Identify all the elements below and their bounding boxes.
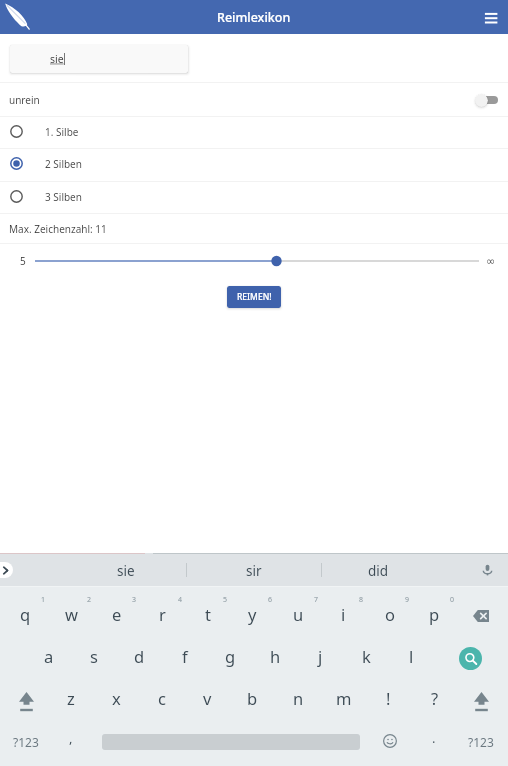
staticText: 5: [223, 595, 228, 605]
button[interactable]: z: [48, 678, 93, 718]
button[interactable]: 1. Silbe: [0, 117, 508, 149]
staticText: s: [90, 645, 98, 667]
button[interactable]: g: [208, 636, 253, 676]
button[interactable]: f: [162, 636, 207, 676]
staticText: Reimlexikon: [217, 9, 291, 26]
staticText: l: [409, 645, 414, 667]
staticText: sie: [117, 562, 135, 580]
staticText: ∞: [486, 255, 496, 268]
button[interactable]: Menu: [482, 7, 502, 27]
button[interactable]: d: [117, 636, 162, 676]
button[interactable]: h: [253, 636, 298, 676]
staticText: g: [225, 645, 236, 667]
button[interactable]: k: [344, 636, 389, 676]
button[interactable]: 7: [276, 596, 321, 636]
staticText: e: [112, 603, 122, 625]
button[interactable]: Shift: [4, 682, 49, 722]
button[interactable]: 4: [140, 596, 185, 636]
staticText: p: [429, 603, 440, 625]
button[interactable]: App logo: [2, 1, 34, 33]
button[interactable]: ?123: [456, 724, 506, 760]
staticText: ?123: [13, 734, 39, 750]
staticText: 2 Silben: [45, 157, 82, 171]
button[interactable]: 0: [412, 596, 457, 636]
staticText: h: [270, 645, 281, 667]
button[interactable]: ?123: [1, 724, 51, 760]
staticText: 2: [87, 595, 92, 605]
button[interactable]: sir: [225, 556, 283, 586]
button[interactable]: 1: [3, 596, 48, 636]
staticText: b: [247, 687, 258, 709]
staticText: 4: [178, 595, 183, 605]
staticText: !: [386, 687, 391, 709]
button[interactable]: m: [321, 678, 366, 718]
staticText: REIMEN!: [237, 291, 272, 303]
staticText: i: [341, 603, 346, 625]
staticText: did: [368, 562, 389, 580]
staticText: o: [385, 603, 395, 625]
staticText: m: [336, 687, 352, 709]
button[interactable]: Backspace: [459, 596, 503, 636]
button[interactable]: 8: [321, 596, 366, 636]
button[interactable]: REIMEN!: [227, 286, 281, 308]
button[interactable]: Shift: [459, 682, 504, 722]
button[interactable]: !: [366, 678, 411, 718]
button[interactable]: a: [26, 636, 71, 676]
staticText: ,: [69, 729, 73, 747]
button[interactable]: s: [71, 636, 116, 676]
staticText: ?123: [468, 734, 494, 750]
button[interactable]: sie: [10, 45, 188, 73]
button[interactable]: x: [94, 678, 139, 718]
button[interactable]: [0, 245, 508, 277]
button[interactable]: ,: [51, 720, 91, 756]
staticText: r: [159, 603, 166, 625]
button[interactable]: 2: [49, 596, 94, 636]
button[interactable]: n: [276, 678, 321, 718]
button[interactable]: sie: [97, 556, 155, 586]
staticText: v: [203, 687, 212, 709]
button[interactable]: j: [298, 636, 343, 676]
button[interactable]: 3 Silben: [0, 182, 508, 214]
staticText: x: [112, 687, 121, 709]
staticText: u: [293, 603, 304, 625]
button[interactable]: v: [185, 678, 230, 718]
staticText: t: [205, 603, 211, 625]
staticText: 5: [20, 254, 26, 268]
button[interactable]: 6: [230, 596, 275, 636]
staticText: 7: [314, 595, 319, 605]
button[interactable]: ?: [412, 678, 457, 718]
staticText: 3: [132, 595, 137, 605]
staticText: Max. Zeichenzahl: 11: [9, 222, 107, 236]
staticText: 6: [268, 595, 273, 605]
staticText: ?: [431, 687, 439, 709]
staticText: f: [182, 645, 188, 667]
staticText: 3 Silben: [45, 190, 82, 204]
button[interactable]: Voice input: [472, 555, 502, 585]
staticText: sie: [50, 52, 64, 66]
button[interactable]: c: [139, 678, 184, 718]
staticText: a: [44, 645, 54, 667]
staticText: unrein: [9, 93, 40, 107]
button[interactable]: 3: [94, 596, 139, 636]
staticText: .: [432, 729, 436, 747]
staticText: 0: [450, 595, 455, 605]
button[interactable]: unrein: [0, 83, 508, 116]
staticText: 1: [41, 595, 46, 605]
button[interactable]: Search: [448, 638, 492, 678]
staticText: y: [248, 603, 257, 625]
button[interactable]: 9: [367, 596, 412, 636]
button[interactable]: did: [349, 556, 407, 586]
button[interactable]: l: [389, 636, 434, 676]
staticText: q: [20, 603, 31, 625]
button[interactable]: b: [230, 678, 275, 718]
staticText: w: [65, 603, 78, 625]
button[interactable]: .: [414, 720, 454, 756]
staticText: z: [67, 687, 75, 709]
button[interactable]: More suggestions: [0, 562, 13, 578]
staticText: n: [293, 687, 304, 709]
button[interactable]: Emoji: [370, 723, 410, 759]
button[interactable]: 2 Silben: [0, 149, 508, 181]
staticText: 9: [405, 595, 410, 605]
button[interactable]: 5: [185, 596, 230, 636]
